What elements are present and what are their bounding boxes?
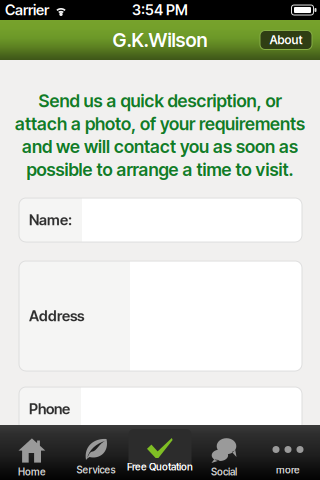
button[interactable]: About — [260, 30, 312, 49]
staticText: 3:54 PM — [132, 1, 188, 19]
button[interactable]: Free Quotation — [128, 425, 192, 480]
button[interactable]: Name: — [19, 198, 302, 242]
staticText: more — [276, 464, 300, 476]
staticText: attach a photo, of your requirements — [15, 113, 305, 134]
staticText: Name: — [29, 211, 72, 229]
staticText: Address — [29, 307, 84, 325]
staticText: and we will contact you as soon as — [22, 136, 298, 157]
button[interactable]: Social — [192, 425, 256, 480]
button[interactable]: Address — [19, 261, 302, 371]
staticText: possible to arrange a time to visit. — [26, 159, 293, 180]
staticText: Services — [76, 464, 115, 476]
button[interactable]: more — [256, 425, 320, 480]
button[interactable]: Phone — [19, 387, 302, 431]
staticText: Social — [211, 466, 237, 478]
button[interactable]: Home — [0, 425, 64, 480]
button[interactable]: Services — [64, 425, 128, 480]
staticText: Send us a quick description, or — [38, 90, 281, 111]
staticText: Phone — [29, 400, 70, 418]
staticText: About — [269, 33, 302, 47]
staticText: Carrier — [5, 1, 49, 19]
staticText: Free Quotation — [127, 461, 193, 473]
staticText: Home — [18, 466, 46, 478]
staticText: G.K.Wilson — [112, 28, 207, 52]
